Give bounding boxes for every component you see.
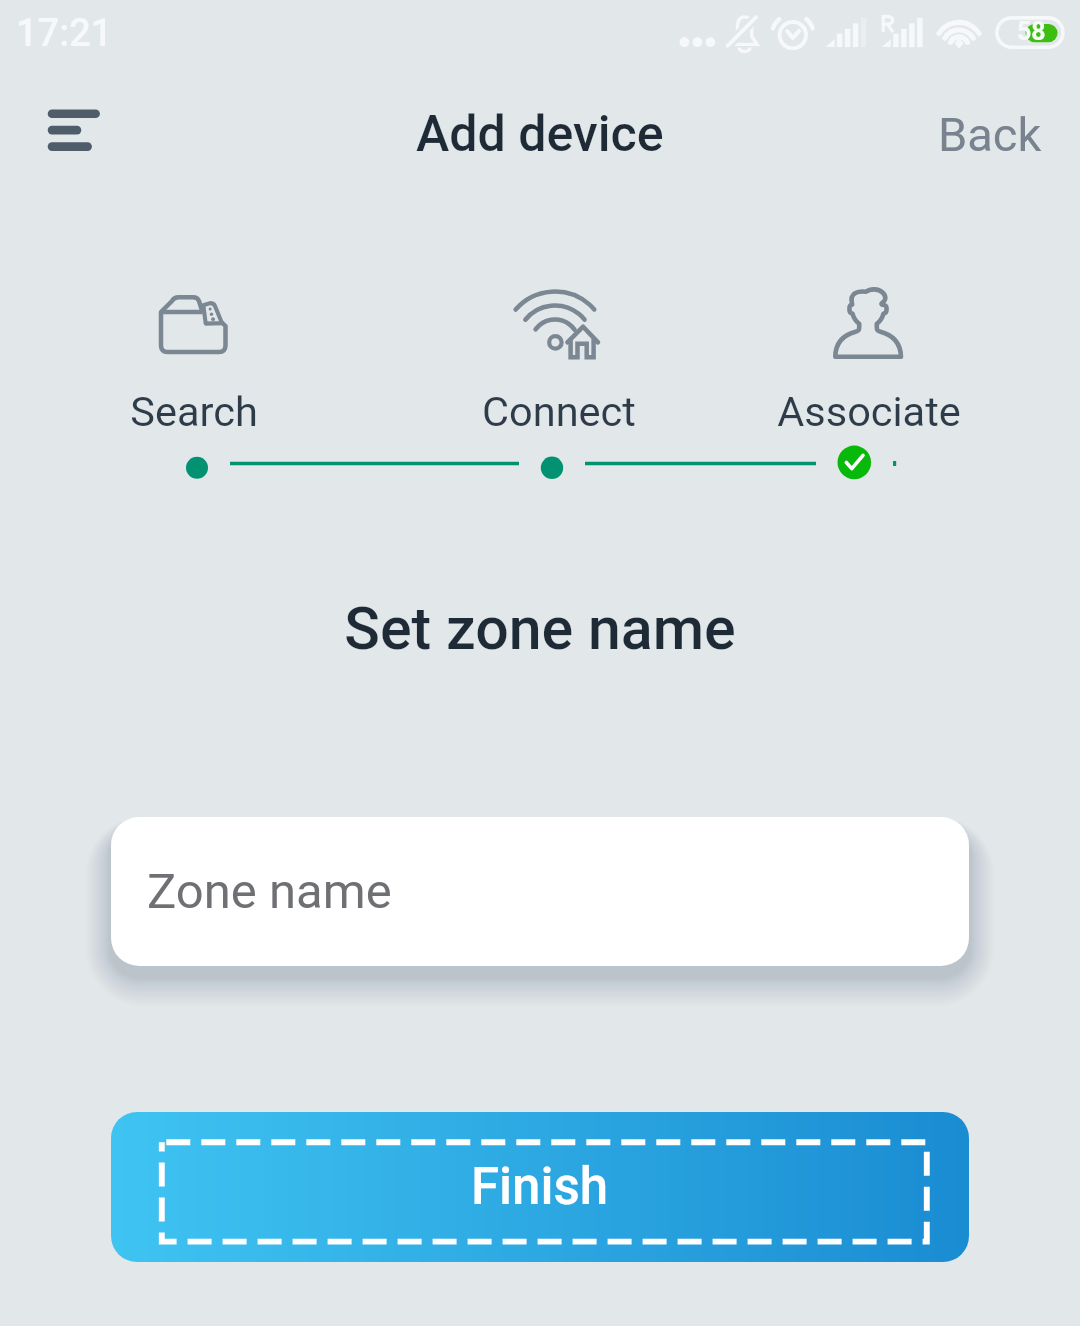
staticText: Associate	[777, 387, 961, 436]
staticText: 17:21	[16, 11, 113, 56]
staticText: Set zone name	[344, 594, 736, 663]
button[interactable]: Menu	[18, 66, 118, 182]
staticText: Finish	[471, 1157, 609, 1217]
staticText: Search	[130, 387, 258, 436]
button[interactable]: Zone name	[111, 817, 969, 966]
button[interactable]: Finish	[111, 1112, 969, 1262]
staticText: Zone name	[147, 863, 392, 920]
staticText: Back	[938, 107, 1042, 162]
staticText: 58	[1017, 17, 1046, 46]
button[interactable]: Back	[900, 87, 1080, 182]
staticText: Connect	[482, 387, 636, 436]
staticText: Add device	[416, 105, 664, 164]
